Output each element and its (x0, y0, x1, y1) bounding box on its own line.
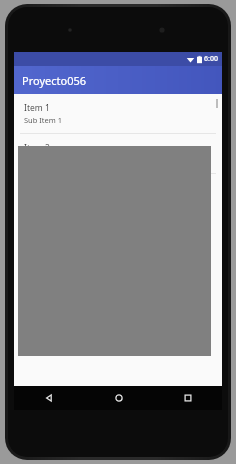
button[interactable]: Item 1 (14, 94, 222, 133)
staticText: Sub Item 1 (24, 115, 63, 125)
staticText: Proyecto056 (22, 73, 87, 88)
button[interactable]: Item 2 (14, 134, 222, 173)
button[interactable]: Back (14, 386, 84, 410)
button[interactable]: Proyecto056 (14, 66, 222, 94)
staticText: 6:00 (204, 54, 218, 64)
staticText: Item 2 (24, 142, 50, 154)
button[interactable]: Home (84, 386, 153, 410)
button[interactable]: Recent apps (153, 386, 222, 410)
staticText: Item 1 (24, 102, 50, 114)
button[interactable]: Item 3 (14, 174, 222, 213)
